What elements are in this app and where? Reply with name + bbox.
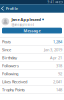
staticText: @janeappleseed <box>11 23 34 26</box>
button[interactable]: Trophy Points <box>0 86 64 94</box>
staticText: 92 <box>58 71 62 76</box>
staticText: 9:41 <box>47 0 54 4</box>
staticText: Following <box>2 71 18 76</box>
staticText: Apr 21 <box>50 55 62 60</box>
staticText: Jan 3, 2019 <box>44 47 62 52</box>
staticText: 148 <box>56 87 62 92</box>
staticText: 2,041 <box>53 79 62 84</box>
button[interactable]: Followers <box>0 62 64 70</box>
button[interactable]: Posts <box>0 38 64 46</box>
staticText: 318 <box>56 63 62 68</box>
staticText: Profile <box>6 6 18 11</box>
staticText: Trophy Points <box>2 87 25 92</box>
button[interactable]: Back <box>0 4 5 13</box>
button[interactable]: Since <box>0 46 64 54</box>
staticText: Likes Received <box>2 79 27 84</box>
button[interactable]: Message <box>2 28 62 34</box>
staticText: Birthday <box>2 55 17 60</box>
button[interactable]: Birthday <box>0 54 64 62</box>
staticText: Posts <box>2 39 11 44</box>
button[interactable]: Likes Received <box>0 78 64 86</box>
staticText: Since <box>2 47 11 52</box>
button[interactable]: Following <box>0 70 64 78</box>
staticText: Followers <box>2 63 19 68</box>
staticText: Message <box>23 28 40 33</box>
staticText: Jane Appleseed <box>11 17 41 22</box>
staticText: 1,284 <box>53 39 62 44</box>
